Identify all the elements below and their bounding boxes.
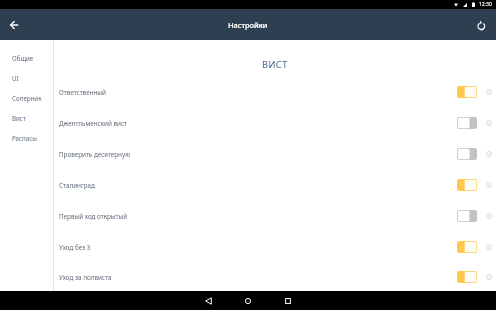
button[interactable]: Первый ход открытый xyxy=(54,200,496,231)
button[interactable]: Общие xyxy=(0,49,53,69)
staticText: Уход без 3 xyxy=(59,243,457,252)
button[interactable]: Help xyxy=(484,180,494,190)
button[interactable]: Help xyxy=(484,211,494,221)
staticText: Ответственный xyxy=(59,88,457,97)
button[interactable]: Enabled xyxy=(457,271,477,283)
button[interactable]: Enabled xyxy=(457,179,477,191)
button[interactable]: Home xyxy=(228,291,268,310)
button[interactable]: Джентльменский вист xyxy=(54,107,496,138)
button[interactable]: Recent apps xyxy=(268,291,308,310)
button[interactable]: Сталинград xyxy=(54,169,496,200)
staticText: ВИСТ xyxy=(262,58,288,71)
button[interactable]: Enabled xyxy=(457,86,477,98)
button[interactable]: Уход за полвиста xyxy=(54,262,496,291)
button[interactable]: UI xyxy=(0,69,53,89)
staticText: Вист xyxy=(12,114,26,122)
button[interactable]: Help xyxy=(484,242,494,252)
button[interactable]: Back xyxy=(188,291,228,310)
button[interactable]: Help xyxy=(484,87,494,97)
button[interactable]: Disabled xyxy=(457,210,477,222)
button[interactable]: Уход без 3 xyxy=(54,231,496,262)
button[interactable]: Проверить десятерную xyxy=(54,138,496,169)
staticText: Общие xyxy=(12,54,34,62)
button[interactable]: Help xyxy=(484,272,494,282)
staticText: 12:30 xyxy=(479,1,492,8)
staticText: UI xyxy=(12,74,19,82)
staticText: Уход за полвиста xyxy=(59,273,457,282)
staticText: Джентльменский вист xyxy=(59,119,457,128)
button[interactable]: Enabled xyxy=(457,241,477,253)
button[interactable]: Reset settings xyxy=(471,15,491,35)
button[interactable]: Help xyxy=(484,149,494,159)
button[interactable]: Back xyxy=(4,15,24,35)
button[interactable]: Disabled xyxy=(457,148,477,160)
staticText: Первый ход открытый xyxy=(59,212,457,221)
button[interactable]: Disabled xyxy=(457,117,477,129)
button[interactable]: Вист xyxy=(0,109,53,129)
button[interactable]: Ответственный xyxy=(54,76,496,107)
staticText: Сталинград xyxy=(59,181,457,190)
button[interactable]: Соперник xyxy=(0,89,53,109)
staticText: Соперник xyxy=(12,94,42,102)
staticText: Настройки xyxy=(228,20,268,30)
button[interactable]: Help xyxy=(484,118,494,128)
staticText: Распасы xyxy=(12,134,38,142)
button[interactable]: Распасы xyxy=(0,129,53,149)
staticText: Проверить десятерную xyxy=(59,150,457,159)
